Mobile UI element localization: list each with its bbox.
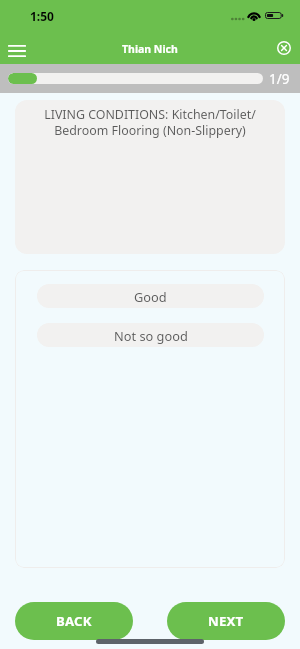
button[interactable]: BACK [15, 602, 133, 640]
staticText: 1:50 [30, 8, 54, 24]
staticText: Good [134, 288, 167, 305]
staticText: NEXT [208, 612, 244, 630]
button[interactable]: Not so good [37, 323, 264, 347]
staticText: Thian Nich [122, 42, 178, 56]
staticText: 1/9 [269, 70, 290, 88]
button[interactable]: Good [37, 284, 264, 308]
staticText: Not so good [114, 327, 188, 344]
button[interactable]: NEXT [167, 602, 285, 640]
staticText: BACK [56, 612, 92, 630]
button[interactable]: Close [272, 36, 296, 60]
button[interactable]: Menu [2, 39, 31, 63]
staticText: LIVING CONDITIONS: Kitchen/Toilet/ Bedro… [25, 106, 275, 139]
